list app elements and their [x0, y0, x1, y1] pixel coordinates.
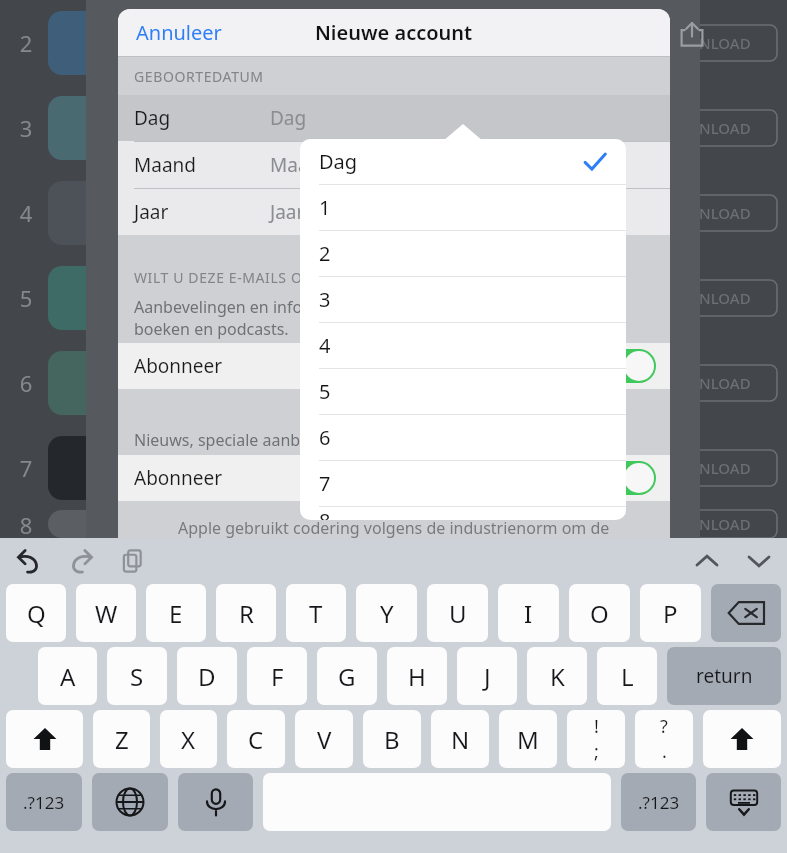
button[interactable]: Toetsenbord wisselen: [92, 773, 168, 831]
button[interactable]: Y: [356, 584, 417, 642]
button[interactable]: M: [499, 710, 557, 768]
button[interactable]: Z: [93, 710, 150, 768]
button[interactable]: L: [597, 647, 657, 705]
staticText: 5: [319, 378, 331, 405]
staticText: 3: [319, 286, 331, 313]
button[interactable]: X: [160, 710, 217, 768]
button[interactable]: 4: [300, 323, 626, 368]
staticText: .: [662, 739, 667, 764]
staticText: 3: [4, 113, 48, 143]
staticText: 4: [319, 332, 331, 359]
staticText: 7: [4, 453, 48, 483]
staticText: Apple gebruikt codering volgens de indus…: [178, 517, 610, 538]
button[interactable]: !: [567, 710, 625, 768]
staticText: 5: [4, 283, 48, 313]
button[interactable]: A: [38, 647, 97, 705]
button[interactable]: R: [216, 584, 276, 642]
staticText: K: [550, 660, 565, 693]
button[interactable]: 1: [300, 185, 626, 230]
button[interactable]: B: [363, 710, 421, 768]
button[interactable]: return: [667, 647, 781, 705]
staticText: H: [408, 660, 426, 693]
button[interactable]: 8: [300, 507, 626, 520]
button[interactable]: O: [569, 584, 630, 642]
button[interactable]: Dag: [118, 95, 670, 141]
staticText: D: [198, 660, 216, 693]
staticText: 8: [319, 507, 331, 520]
staticText: G: [338, 660, 356, 693]
button[interactable]: .?123: [621, 773, 696, 831]
button[interactable]: T: [286, 584, 346, 642]
button[interactable]: Maand: [118, 142, 670, 188]
button[interactable]: Ongedaan maken: [8, 540, 50, 582]
staticText: 1: [319, 194, 331, 221]
button[interactable]: 5: [300, 369, 626, 414]
button[interactable]: S: [107, 647, 167, 705]
button[interactable]: Vorige: [689, 543, 725, 579]
button[interactable]: Annuleer: [118, 13, 232, 52]
button[interactable]: Shift: [703, 710, 781, 768]
staticText: .?123: [638, 791, 680, 814]
staticText: C: [248, 723, 264, 756]
staticText: 7: [319, 470, 331, 497]
button[interactable]: 3: [300, 277, 626, 322]
button[interactable]: Opnieuw: [60, 540, 102, 582]
staticText: Abonneer: [134, 353, 223, 379]
staticText: GEBOORTEDATUM: [134, 67, 264, 86]
button[interactable]: D: [177, 647, 237, 705]
staticText: Z: [115, 723, 129, 756]
button[interactable]: H: [387, 647, 447, 705]
staticText: B: [384, 723, 400, 756]
button[interactable]: .?123: [6, 773, 82, 831]
staticText: Jaar: [270, 199, 305, 225]
staticText: 2: [319, 240, 331, 267]
staticText: J: [484, 660, 491, 693]
staticText: O: [590, 597, 609, 630]
staticText: I: [524, 597, 533, 630]
button[interactable]: Volgende: [741, 543, 777, 579]
button[interactable]: Shift: [6, 710, 83, 768]
button[interactable]: F: [247, 647, 307, 705]
button[interactable]: Toetsenbord verbergen: [706, 773, 781, 831]
button[interactable]: Abonneer: [118, 455, 670, 501]
staticText: NLOAD: [699, 458, 751, 478]
staticText: Maand: [134, 152, 270, 178]
staticText: NLOAD: [699, 373, 751, 393]
staticText: T: [309, 597, 323, 630]
button[interactable]: ?: [635, 710, 693, 768]
button[interactable]: E: [146, 584, 206, 642]
button[interactable]: Dicteren: [178, 773, 253, 831]
staticText: R: [239, 597, 254, 630]
button[interactable]: 7: [300, 461, 626, 506]
button[interactable]: 6: [300, 415, 626, 460]
button[interactable]: N: [431, 710, 489, 768]
button[interactable]: G: [317, 647, 377, 705]
button[interactable]: P: [640, 584, 701, 642]
staticText: ?: [660, 714, 668, 739]
button[interactable]: U: [427, 584, 488, 642]
staticText: !: [594, 714, 599, 739]
staticText: 8: [4, 510, 48, 538]
staticText: NLOAD: [699, 33, 751, 53]
button[interactable]: C: [227, 710, 285, 768]
button[interactable]: Abonneer: [118, 343, 670, 389]
staticText: W: [95, 597, 118, 630]
staticText: Dag: [319, 148, 358, 175]
button[interactable]: V: [295, 710, 353, 768]
button[interactable]: K: [527, 647, 587, 705]
staticText: F: [271, 660, 284, 693]
button[interactable]: Dag: [300, 139, 626, 184]
staticText: E: [169, 597, 183, 630]
button[interactable]: I: [498, 584, 559, 642]
button[interactable]: Q: [6, 584, 66, 642]
button[interactable]: J: [457, 647, 517, 705]
button[interactable]: Deel: [672, 14, 712, 54]
button[interactable]: 2: [300, 231, 626, 276]
button[interactable]: W: [76, 584, 136, 642]
button[interactable]: Plakken: [112, 540, 154, 582]
staticText: NLOAD: [699, 118, 751, 138]
staticText: return: [696, 663, 753, 689]
button[interactable]: Jaar: [118, 189, 670, 235]
button[interactable]: Backspace: [711, 584, 781, 642]
